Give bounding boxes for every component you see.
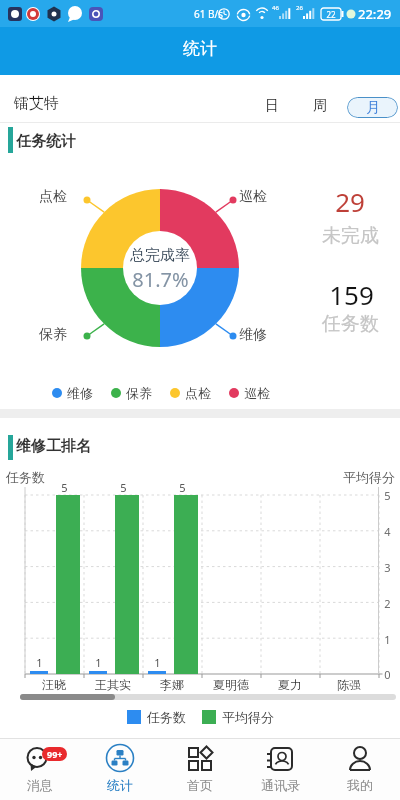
staticText: 李娜 — [160, 677, 184, 692]
staticText: 2 — [384, 596, 391, 610]
staticText: 保养 — [126, 385, 152, 401]
staticText: 5 — [384, 488, 391, 502]
staticText: 22:29 — [358, 5, 392, 23]
staticText: 巡检 — [239, 188, 267, 206]
staticText: 任务数 — [147, 709, 186, 725]
staticText: 3 — [384, 560, 391, 574]
staticText: 月 — [366, 99, 380, 117]
button[interactable]: 99+ — [0, 739, 80, 800]
staticText: 保养 — [39, 326, 67, 344]
staticText: 26 — [296, 4, 303, 12]
staticText: 任务数 — [6, 469, 45, 485]
button[interactable]: 巡检 — [229, 385, 270, 401]
staticText: 统计 — [107, 777, 133, 793]
staticText: 22 — [326, 9, 336, 20]
button[interactable]: 维修 — [52, 385, 93, 401]
staticText: 统计 — [183, 38, 217, 59]
staticText: 夏力 — [278, 677, 302, 692]
staticText: 任务统计 — [16, 132, 76, 151]
staticText: 1 — [36, 655, 43, 670]
staticText: 46 — [272, 4, 279, 12]
staticText: 点检 — [39, 188, 67, 206]
button[interactable]: 点检 — [170, 385, 211, 401]
staticText: 1 — [154, 655, 161, 670]
button[interactable]: 首页 — [160, 739, 240, 800]
button[interactable]: 月 — [347, 97, 398, 118]
staticText: 汪晓 — [42, 677, 66, 692]
staticText: 81.7% — [132, 266, 189, 293]
staticText: 平均得分 — [343, 469, 395, 485]
staticText: 5 — [179, 480, 186, 495]
staticText: 0 — [384, 667, 391, 681]
staticText: 29 — [335, 184, 365, 214]
button[interactable]: 保养 — [111, 385, 152, 401]
staticText: 维修 — [239, 326, 267, 344]
staticText: 维修 — [67, 385, 93, 401]
staticText: 61 B/s — [194, 7, 224, 21]
staticText: 4 — [384, 524, 391, 538]
button[interactable]: 统计 — [80, 739, 160, 800]
staticText: 任务数 — [322, 312, 379, 336]
staticText: 夏明德 — [213, 677, 249, 692]
staticText: 平均得分 — [222, 709, 274, 725]
button[interactable]: 通讯录 — [240, 739, 320, 800]
staticText: 5 — [61, 480, 68, 495]
staticText: 巡检 — [244, 385, 270, 401]
staticText: 99+ — [47, 748, 63, 760]
button[interactable]: 周 — [300, 93, 340, 119]
staticText: 我的 — [347, 777, 373, 793]
staticText: 5 — [120, 480, 127, 495]
staticText: 点检 — [185, 385, 211, 401]
staticText: 159 — [329, 277, 374, 307]
staticText: 维修工排名 — [16, 437, 91, 456]
button[interactable]: 我的 — [320, 739, 400, 800]
staticText: 陈强 — [337, 677, 361, 692]
staticText: 通讯录 — [261, 777, 300, 793]
staticText: 日 — [265, 97, 279, 115]
staticText: 镭艾特 — [14, 94, 59, 113]
staticText: 1 — [384, 632, 391, 646]
staticText: 未完成 — [322, 224, 379, 248]
staticText: 王其实 — [95, 677, 131, 692]
staticText: 1 — [95, 655, 102, 670]
staticText: 总完成率 — [130, 246, 190, 265]
staticText: 首页 — [187, 777, 213, 793]
staticText: 周 — [313, 97, 327, 115]
button[interactable]: 日 — [252, 93, 292, 119]
staticText: 消息 — [27, 777, 53, 793]
